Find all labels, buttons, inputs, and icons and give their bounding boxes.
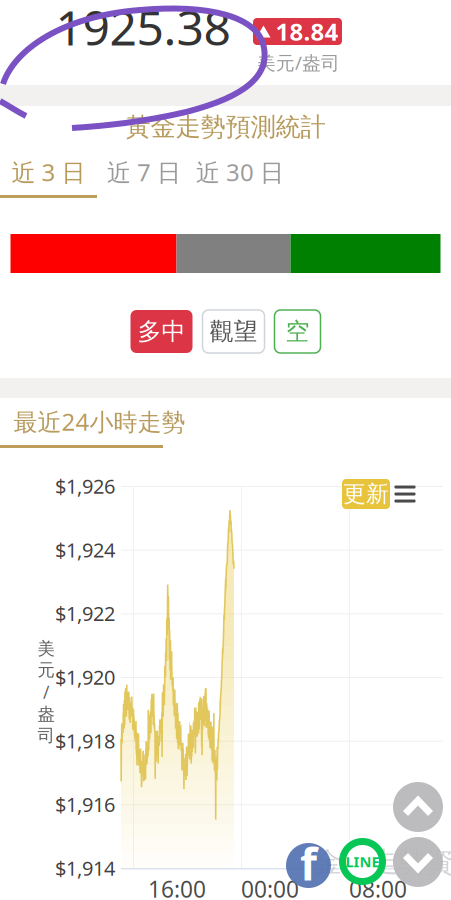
- staticText: 元: [37, 659, 54, 681]
- staticText: 1925.38: [55, 0, 230, 59]
- button[interactable]: 近 30 日: [191, 150, 289, 194]
- staticText: $1,920: [55, 664, 115, 690]
- button[interactable]: 空: [274, 310, 320, 353]
- staticText: 多中: [137, 317, 185, 346]
- staticText: 00:00: [241, 874, 299, 900]
- button[interactable]: 最近24小時走勢: [0, 398, 163, 445]
- staticText: 08:00: [349, 874, 407, 900]
- staticText: LINE: [345, 852, 379, 871]
- staticText: 近 30 日: [196, 156, 284, 188]
- button[interactable]: 近 7 日: [97, 150, 191, 194]
- button[interactable]: Share on Facebook: [286, 843, 331, 888]
- staticText: /: [43, 681, 49, 704]
- button[interactable]: Scroll to top: [393, 782, 443, 832]
- staticText: 盎: [37, 704, 54, 725]
- staticText: 近 7 日: [107, 156, 181, 188]
- button[interactable]: Scroll to bottom: [393, 837, 443, 887]
- button[interactable]: 多中: [130, 310, 192, 353]
- staticText: $1,924: [55, 536, 115, 563]
- staticText: 更新: [343, 480, 389, 508]
- staticText: 16:00: [148, 874, 206, 900]
- staticText: 觀望: [209, 317, 257, 346]
- staticText: $1,922: [55, 600, 115, 627]
- button[interactable]: Share on LINE: [339, 838, 386, 885]
- staticText: $1,914: [55, 855, 115, 881]
- button[interactable]: Chart menu: [391, 480, 419, 508]
- staticText: $1,916: [55, 791, 115, 818]
- staticText: 司: [37, 725, 54, 746]
- staticText: 金價走勢資訊站: [314, 845, 451, 879]
- staticText: 美元/盎司: [257, 50, 340, 75]
- button[interactable]: 近 3 日: [0, 150, 97, 194]
- staticText: 18.84: [275, 16, 338, 47]
- staticText: f: [300, 834, 317, 893]
- button[interactable]: 觀望: [202, 310, 264, 353]
- staticText: $1,918: [55, 727, 115, 754]
- button[interactable]: 更新: [342, 479, 390, 509]
- staticText: 空: [285, 317, 309, 346]
- staticText: 黃金走勢預測統計: [125, 111, 325, 142]
- staticText: 美: [37, 638, 54, 659]
- staticText: $1,926: [55, 473, 115, 499]
- staticText: 最近24小時走勢: [13, 406, 185, 437]
- staticText: 近 3 日: [11, 156, 85, 188]
